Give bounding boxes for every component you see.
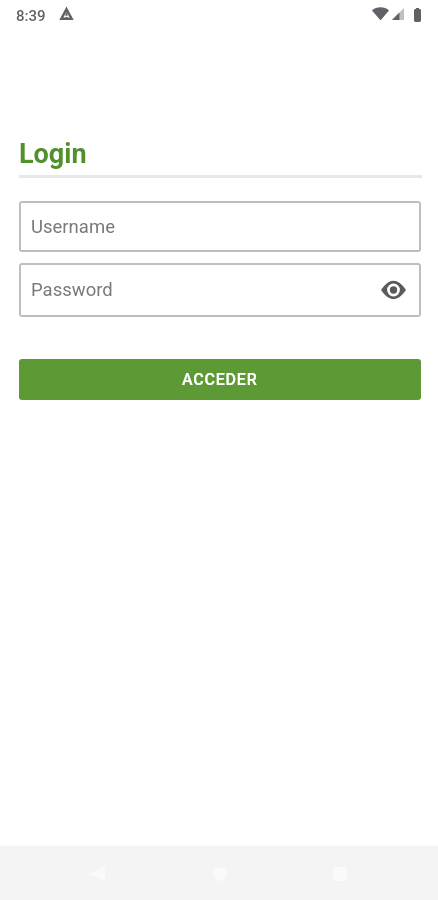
button[interactable]: Show password [374, 271, 412, 309]
button[interactable]: Username [19, 201, 421, 252]
staticText: ACCEDER [182, 370, 258, 389]
button[interactable]: Password [19, 263, 421, 317]
staticText: 8:39 [16, 7, 46, 25]
staticText: Login [19, 138, 87, 170]
button[interactable]: ACCEDER [19, 359, 421, 400]
staticText: Password [31, 279, 113, 301]
staticText: Username [31, 216, 115, 238]
